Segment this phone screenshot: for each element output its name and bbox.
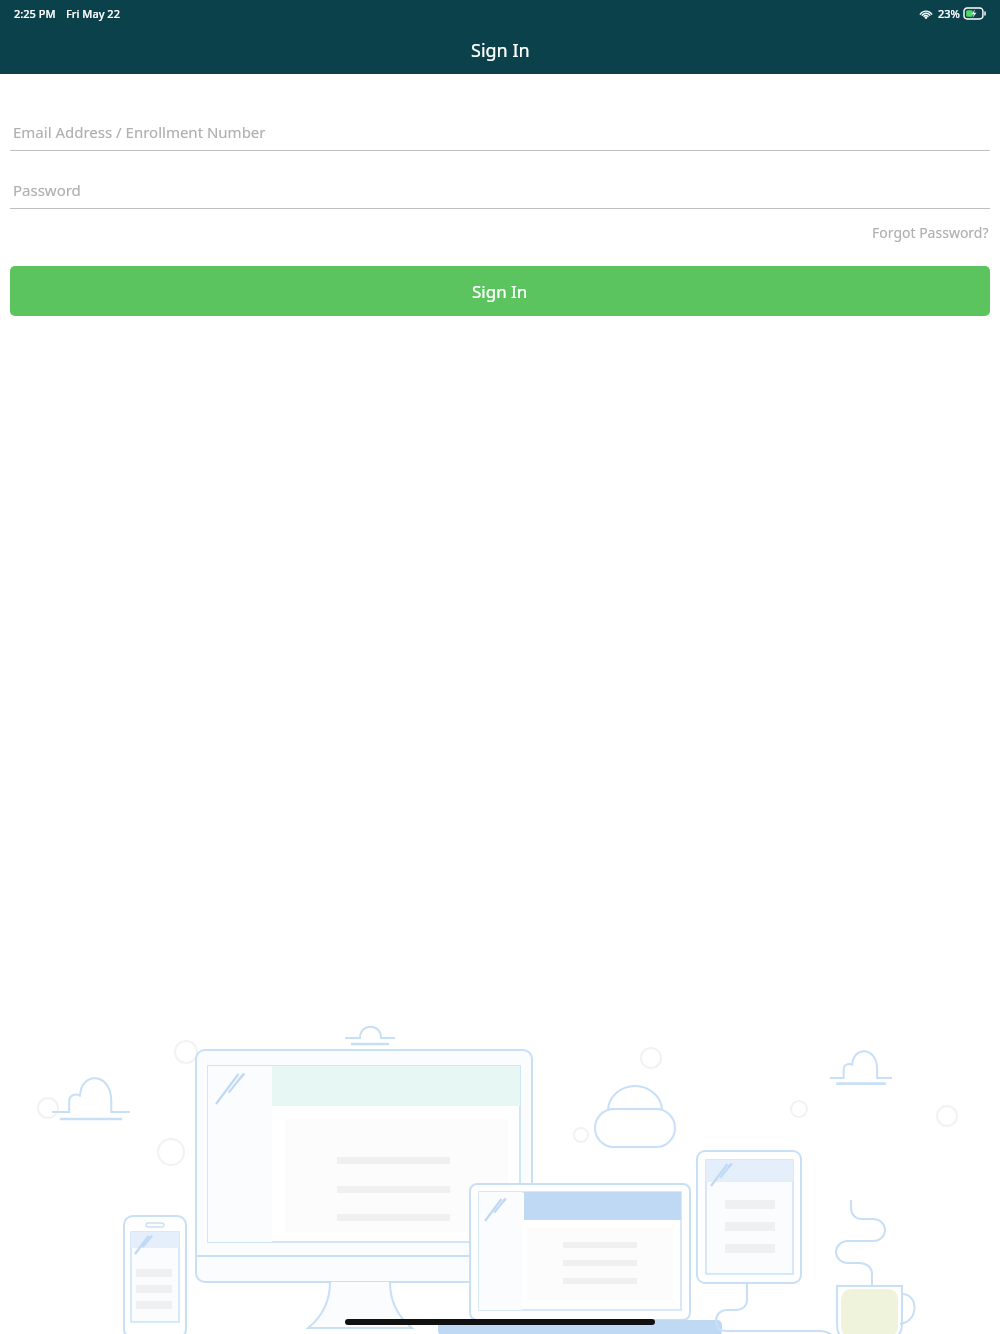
button[interactable]: Password [0,172,1000,209]
staticText: Sign In [472,280,528,303]
staticText: Sign In [471,38,530,63]
staticText: 2:25 PM [14,6,56,21]
button[interactable]: Forgot Password? [0,219,1000,246]
button[interactable]: Email Address / Enrollment Number [0,114,1000,151]
staticText: 23% [938,6,960,21]
staticText: Email Address / Enrollment Number [13,122,266,142]
button[interactable]: Sign In [10,266,990,316]
staticText: Fri May 22 [66,6,120,21]
staticText: Forgot Password? [872,223,989,242]
staticText: Password [13,180,81,200]
